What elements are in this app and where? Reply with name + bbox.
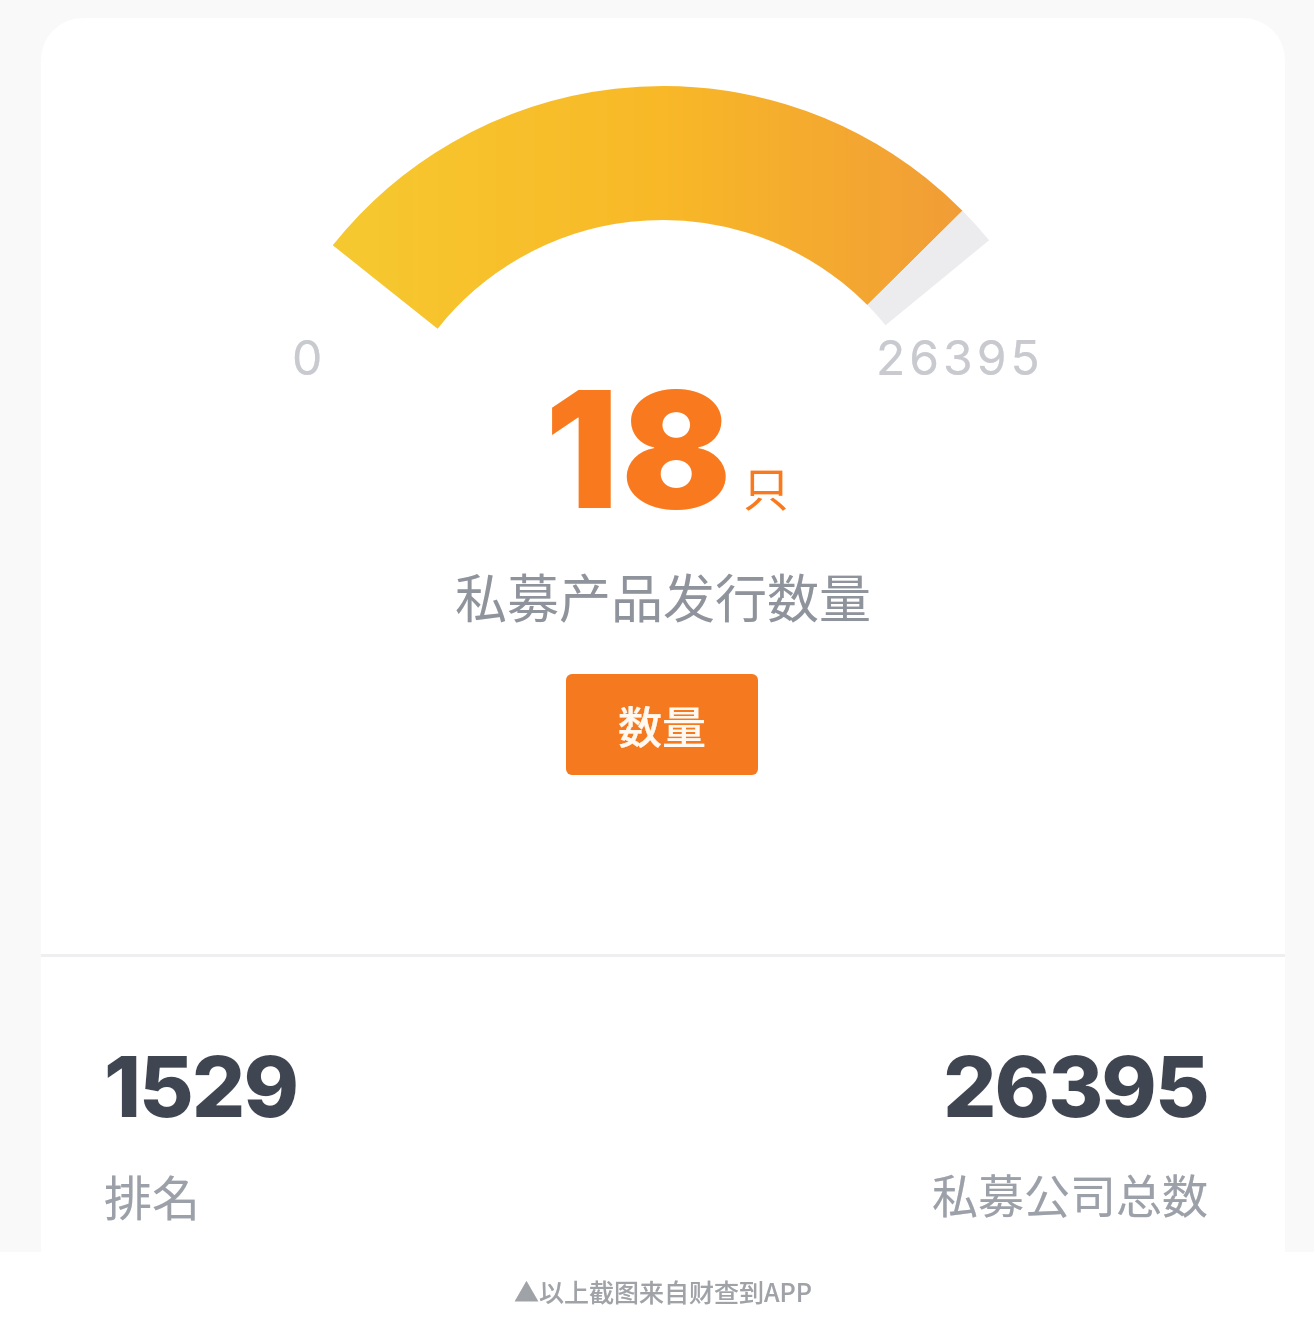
button[interactable]: 数量	[566, 674, 758, 775]
staticText: 18	[545, 351, 735, 547]
staticText: 只	[743, 453, 789, 520]
staticText: 26395	[876, 328, 1044, 386]
staticText: 排名	[104, 1160, 201, 1230]
staticText: 数量	[618, 693, 706, 757]
staticText: 26395	[943, 1036, 1208, 1138]
staticText: 0	[292, 328, 323, 386]
staticText: 1529	[104, 1036, 297, 1138]
staticText: 私募公司总数	[932, 1160, 1208, 1227]
staticText: 私募产品发行数量	[455, 558, 872, 633]
staticText: ▲以上截图来自财查到APP	[514, 1273, 812, 1309]
